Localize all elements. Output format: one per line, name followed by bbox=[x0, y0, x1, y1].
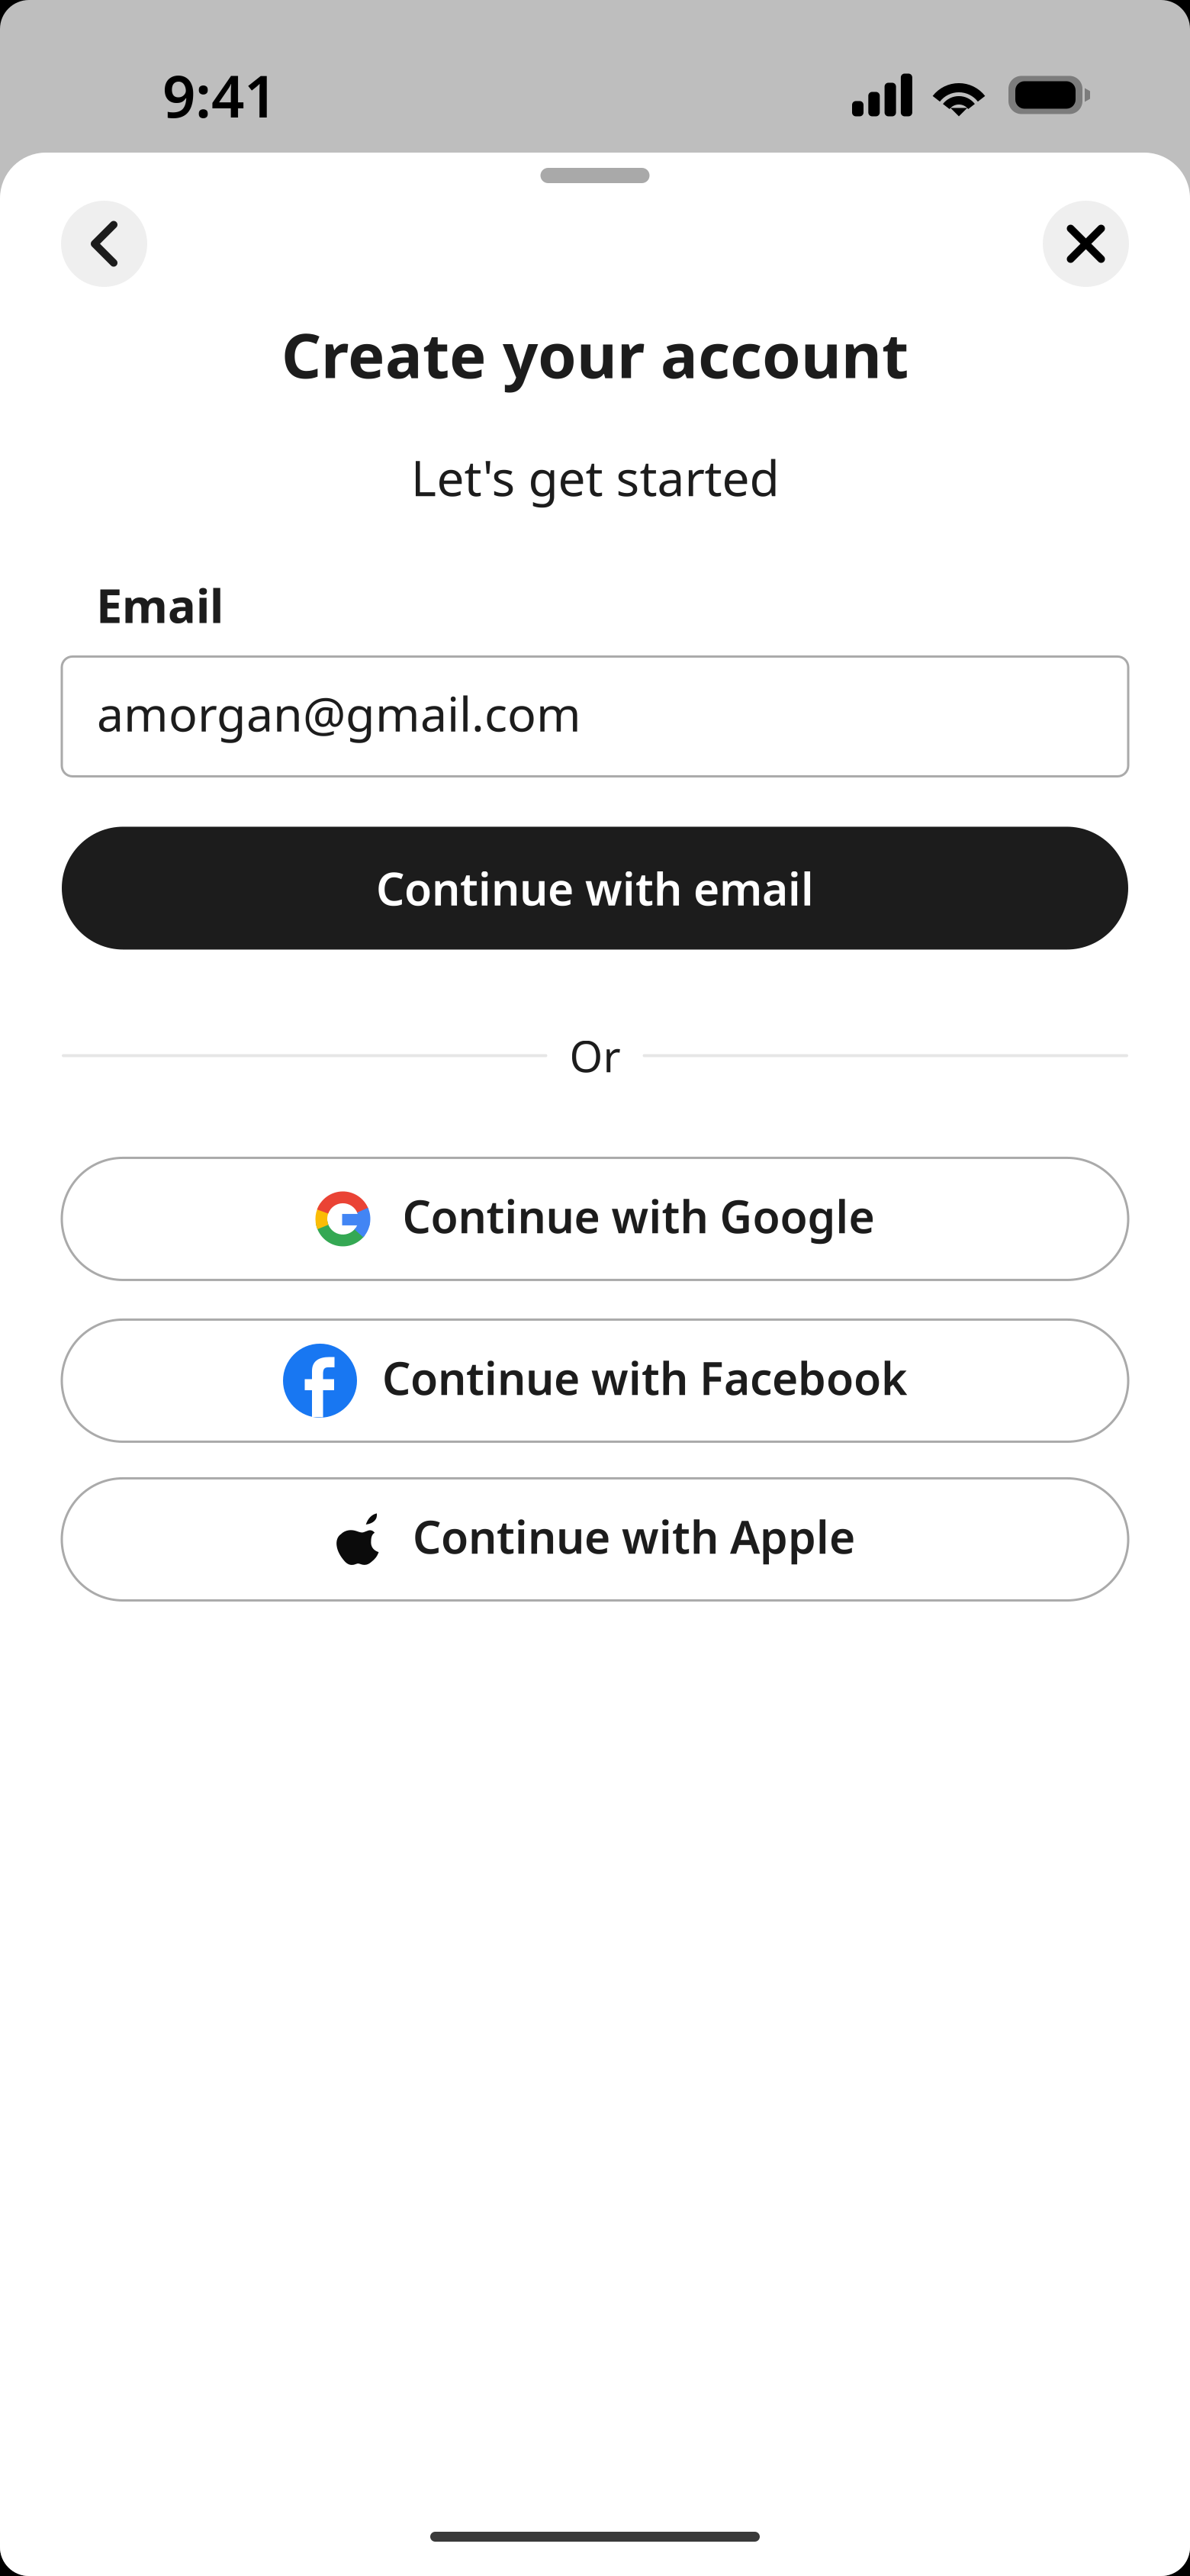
staticText: amorgan@gmail.com bbox=[97, 681, 581, 745]
staticText: Continue with email bbox=[376, 858, 814, 918]
button[interactable]: Continue with Apple bbox=[62, 1478, 1128, 1600]
staticText: Continue with Apple bbox=[413, 1507, 855, 1566]
button[interactable]: Back bbox=[61, 201, 147, 287]
button[interactable]: Continue with Facebook bbox=[62, 1320, 1128, 1442]
button[interactable]: Continue with Google bbox=[62, 1158, 1128, 1280]
staticText: Let's get started bbox=[411, 445, 779, 510]
staticText: 9:41 bbox=[162, 56, 277, 133]
staticText: Or bbox=[569, 1027, 621, 1084]
staticText: Continue with Google bbox=[402, 1186, 875, 1246]
button[interactable]: Continue with email bbox=[62, 827, 1128, 950]
staticText: Create your account bbox=[281, 313, 909, 395]
staticText: Continue with Facebook bbox=[382, 1348, 907, 1407]
button[interactable]: Close bbox=[1043, 201, 1129, 287]
staticText: Email bbox=[96, 574, 224, 636]
